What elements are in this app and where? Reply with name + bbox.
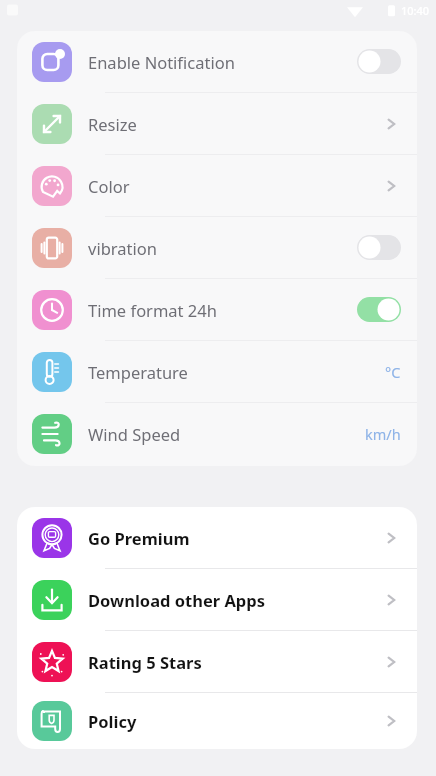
staticText: Go Premium (88, 527, 190, 549)
staticText: Temperature (88, 361, 188, 383)
button[interactable]: Temperature (17, 341, 417, 402)
staticText: Wind Speed (88, 423, 181, 445)
staticText: 10:40 (401, 3, 430, 18)
button[interactable]: Color (17, 155, 417, 216)
staticText: Resize (88, 113, 137, 135)
button[interactable]: vibration (17, 217, 417, 278)
button[interactable]: Download other Apps (17, 569, 417, 630)
staticText: Time format 24h (88, 299, 217, 321)
button[interactable]: Rating 5 Stars (17, 631, 417, 692)
staticText: Color (88, 175, 130, 197)
button[interactable]: Enable Notification (17, 31, 417, 92)
staticText: Enable Notification (88, 51, 235, 73)
button[interactable]: Go Premium (17, 507, 417, 568)
other: Toggle (357, 49, 401, 74)
other: Toggle (357, 235, 401, 260)
button[interactable]: Policy (17, 693, 417, 749)
button[interactable]: Wind Speed (17, 403, 417, 464)
staticText: Rating 5 Stars (88, 651, 202, 673)
button[interactable]: Resize (17, 93, 417, 154)
staticText: Policy (88, 710, 137, 732)
staticText: Download other Apps (88, 589, 266, 611)
other: Toggle (357, 297, 401, 322)
button[interactable]: Time format 24h (17, 279, 417, 340)
staticText: vibration (88, 237, 157, 259)
staticText: km/h (365, 424, 401, 444)
staticText: °C (385, 362, 401, 382)
